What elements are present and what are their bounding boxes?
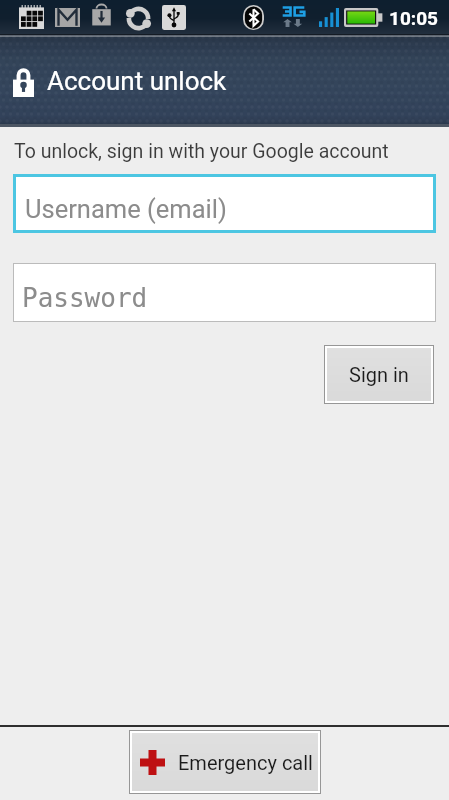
staticText: Username (email) [25,194,227,224]
button[interactable]: Password [13,263,436,322]
staticText: 10:05 [389,7,438,29]
staticText: To unlock, sign in with your Google acco… [14,140,389,163]
button[interactable]: Username (email) [13,174,436,233]
staticText: Sign in [349,363,409,386]
button[interactable]: Emergency call [129,730,321,794]
staticText: Account unlock [47,66,227,96]
button[interactable]: Sign in [324,345,434,404]
staticText: Password [22,283,148,313]
staticText: Emergency call [178,751,313,774]
